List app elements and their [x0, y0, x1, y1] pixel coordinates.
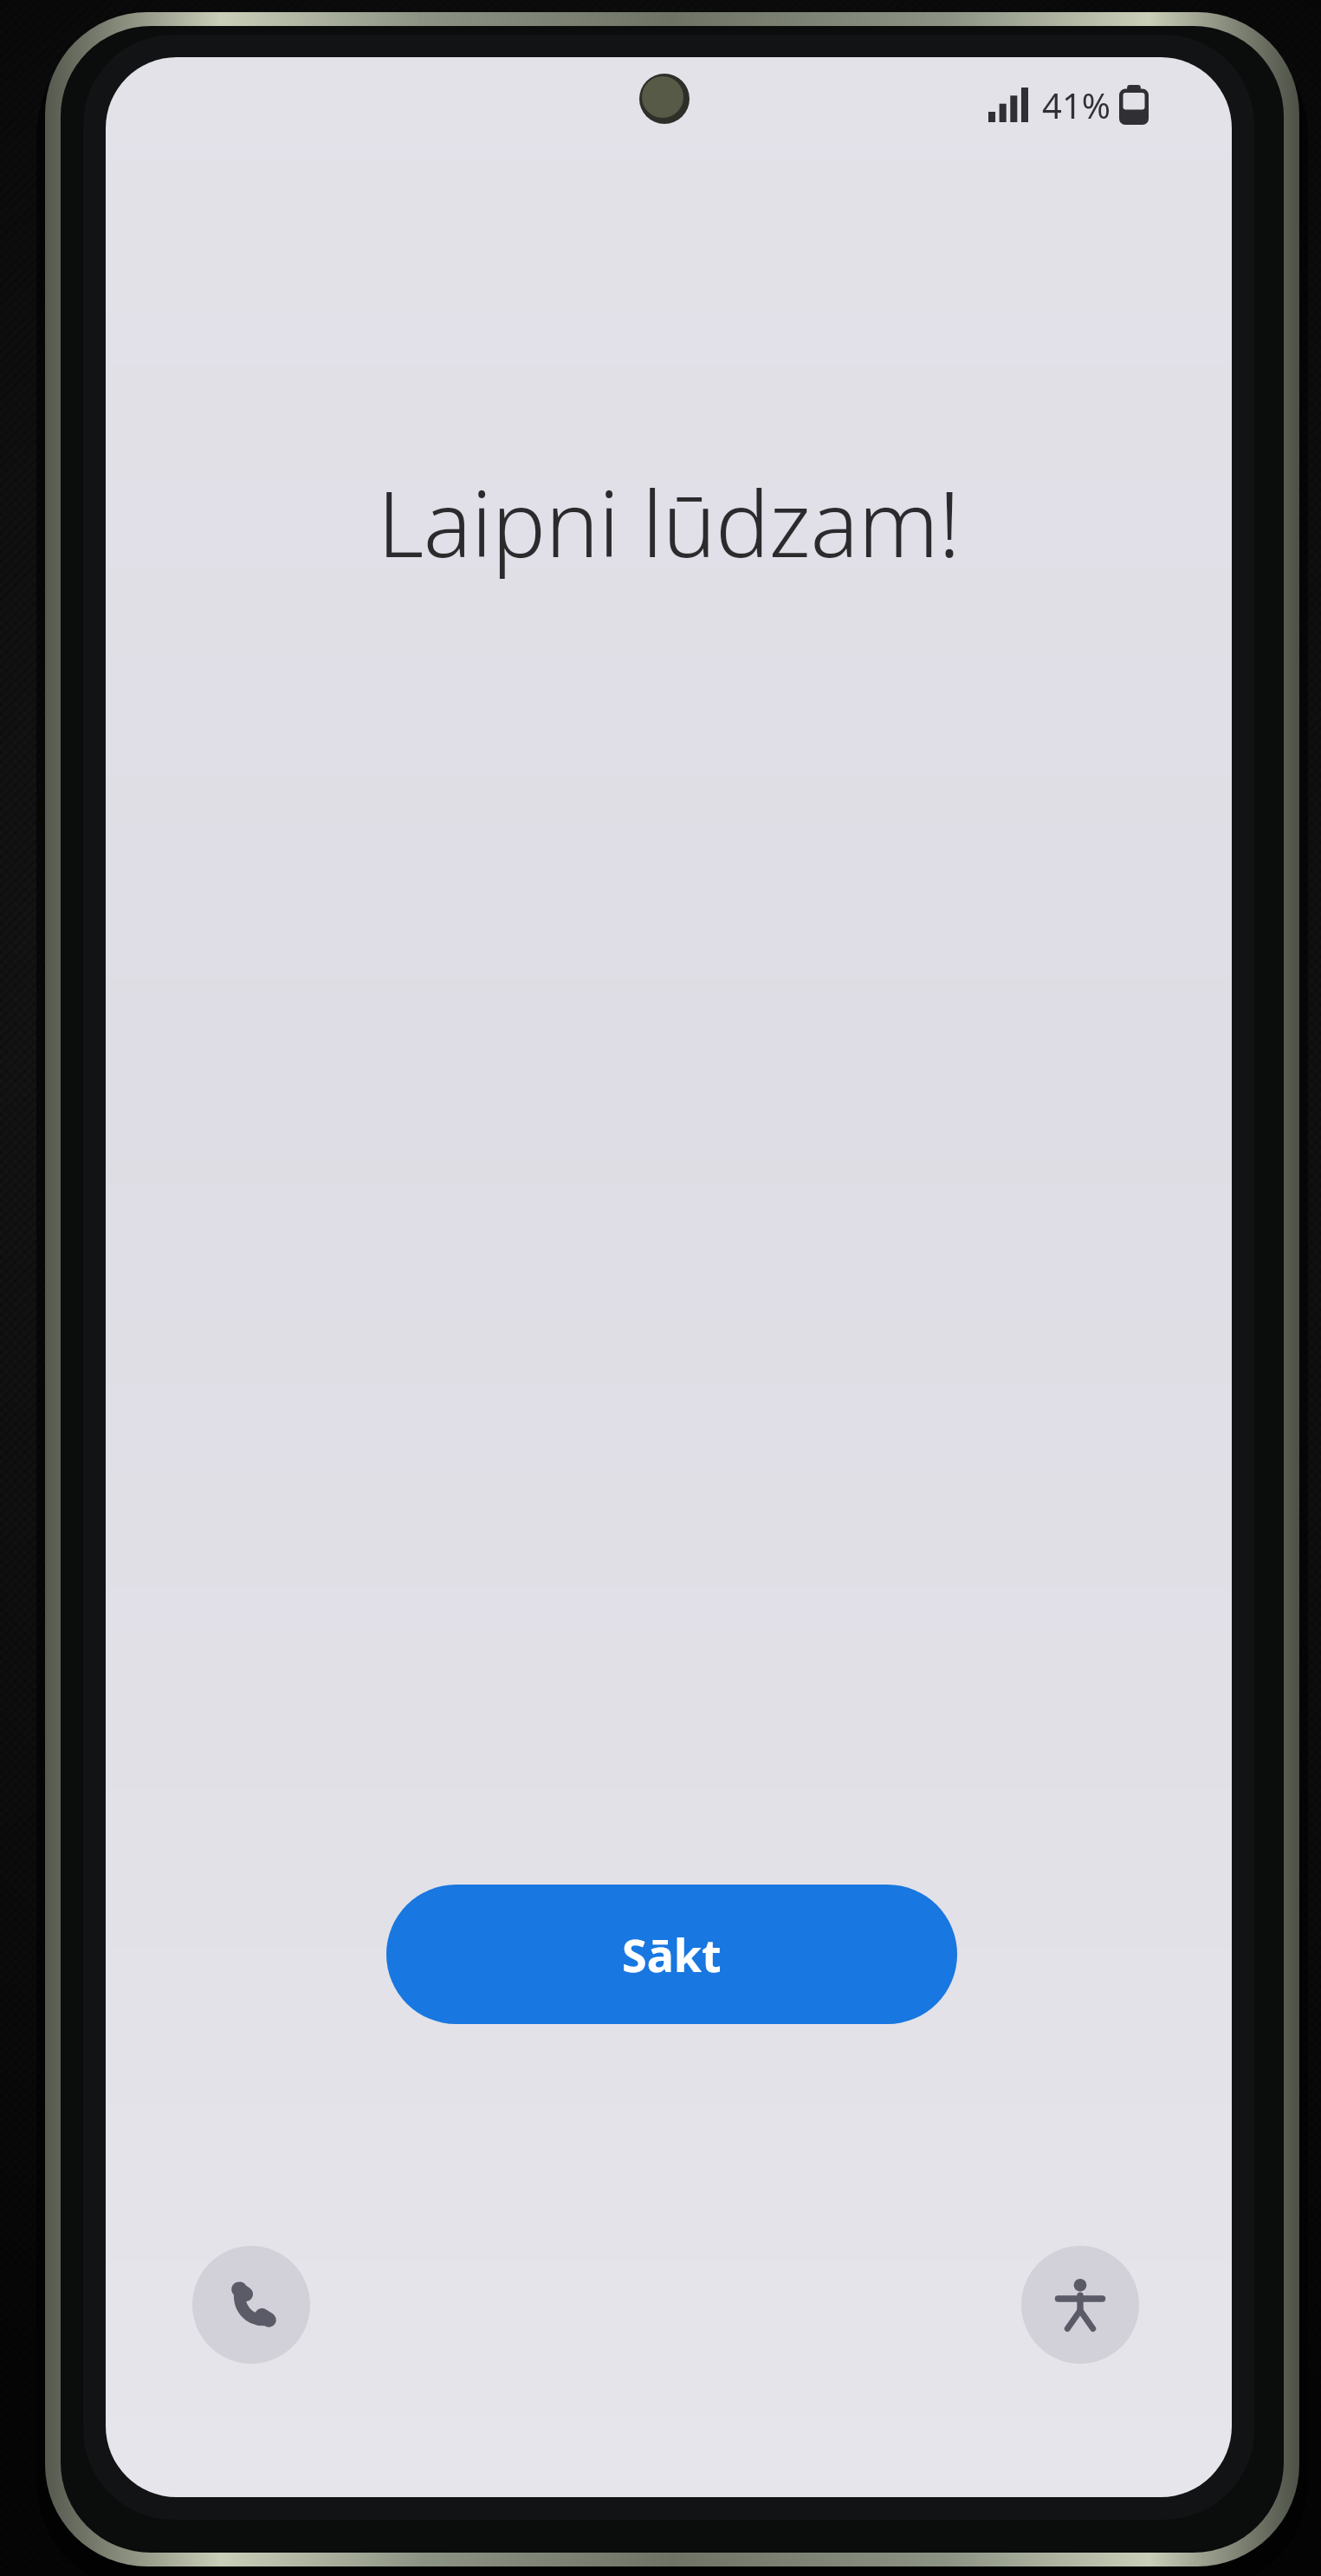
staticText: Laipni lūdzam!	[106, 461, 1232, 584]
staticText: Sākt	[622, 1924, 722, 1985]
button[interactable]: Accessibility	[1021, 2246, 1139, 2364]
button[interactable]: Sākt	[386, 1885, 957, 2024]
staticText: 41%	[1042, 81, 1111, 128]
button[interactable]: Emergency call	[192, 2246, 310, 2364]
